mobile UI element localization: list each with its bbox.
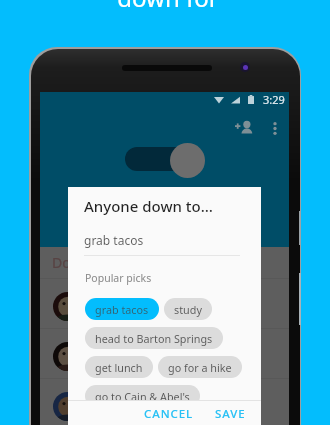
- staticText: CANCEL: [144, 406, 194, 420]
- button[interactable]: Compose: [170, 143, 205, 178]
- staticText: go for a hike: [93, 408, 152, 422]
- button[interactable]: Add person: [231, 115, 257, 141]
- staticText: grab tacos: [93, 308, 143, 322]
- staticText: go for a hike: [168, 360, 232, 375]
- staticText: get lunch: [95, 360, 143, 375]
- staticText: 3:29: [263, 92, 285, 107]
- staticText: head to Barton Springs: [95, 331, 213, 346]
- button[interactable]: head to Barton Springs: [85, 327, 223, 349]
- staticText: Down for…: [52, 253, 122, 272]
- staticText: Raj: [93, 392, 111, 408]
- button[interactable]: CANCEL: [137, 401, 201, 425]
- button[interactable]: Raj: [40, 379, 289, 425]
- button[interactable]: get lunch: [85, 356, 153, 378]
- button[interactable]: study: [164, 298, 212, 320]
- button[interactable]: More options: [263, 116, 287, 140]
- staticText: Emily: [93, 292, 124, 308]
- button[interactable]: grab tacos: [85, 298, 159, 320]
- staticText: go to Cain & Abel's: [95, 389, 190, 404]
- button[interactable]: Emily: [40, 279, 289, 328]
- staticText: Anyone down to…: [84, 196, 213, 216]
- staticText: study: [93, 358, 119, 372]
- button[interactable]: go to Cain & Abel's: [85, 385, 200, 407]
- staticText: grab tacos: [84, 232, 144, 248]
- button[interactable]: SAVE: [208, 401, 253, 425]
- staticText: grab tacos: [95, 302, 149, 317]
- button[interactable]: go for a hike: [158, 356, 242, 378]
- button[interactable]: Sarah: [40, 329, 289, 378]
- staticText: SAVE: [215, 406, 246, 420]
- staticText: study: [174, 302, 202, 317]
- staticText: Popular picks: [85, 271, 152, 285]
- staticText: Sarah: [93, 342, 126, 358]
- staticText: down for: [3, 0, 330, 14]
